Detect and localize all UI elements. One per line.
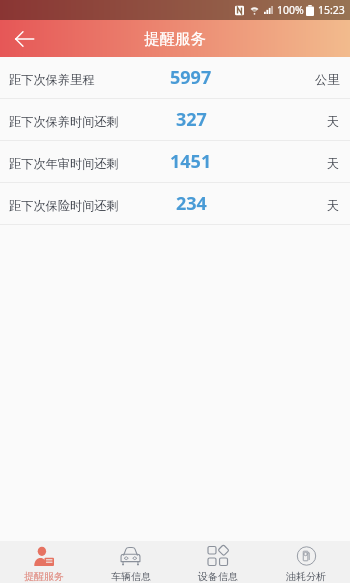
button[interactable]: 油耗分析 [262, 541, 350, 583]
staticText: 1451 [170, 149, 212, 174]
staticText: 距下次年审时间还剩 [9, 156, 119, 171]
button[interactable]: 设备信息 [174, 541, 262, 583]
staticText: 天 [327, 114, 340, 129]
button[interactable]: 提醒服务 [0, 541, 87, 583]
staticText: 天 [327, 156, 340, 171]
button[interactable]: 返回 [0, 20, 49, 57]
staticText: 提醒服务 [24, 570, 64, 583]
staticText: 距下次保险时间还剩 [9, 198, 119, 213]
staticText: 距下次保养时间还剩 [9, 114, 119, 129]
staticText: 327 [176, 107, 207, 132]
staticText: 车辆信息 [111, 570, 151, 583]
staticText: 天 [327, 198, 340, 213]
staticText: 提醒服务 [144, 29, 206, 49]
button[interactable]: 距下次保养里程 [0, 57, 350, 99]
button[interactable]: 距下次保养时间还剩 [0, 99, 350, 141]
staticText: 油耗分析 [286, 570, 326, 583]
staticText: 距下次保养里程 [9, 72, 95, 87]
staticText: 15:23 [318, 3, 345, 17]
staticText: 234 [176, 191, 207, 216]
staticText: 设备信息 [198, 570, 238, 583]
staticText: 5997 [170, 65, 212, 90]
button[interactable]: 距下次年审时间还剩 [0, 141, 350, 183]
staticText: 公里 [315, 72, 340, 87]
button[interactable]: 车辆信息 [87, 541, 174, 583]
button[interactable]: 距下次保险时间还剩 [0, 183, 350, 225]
staticText: 100% [277, 3, 304, 17]
